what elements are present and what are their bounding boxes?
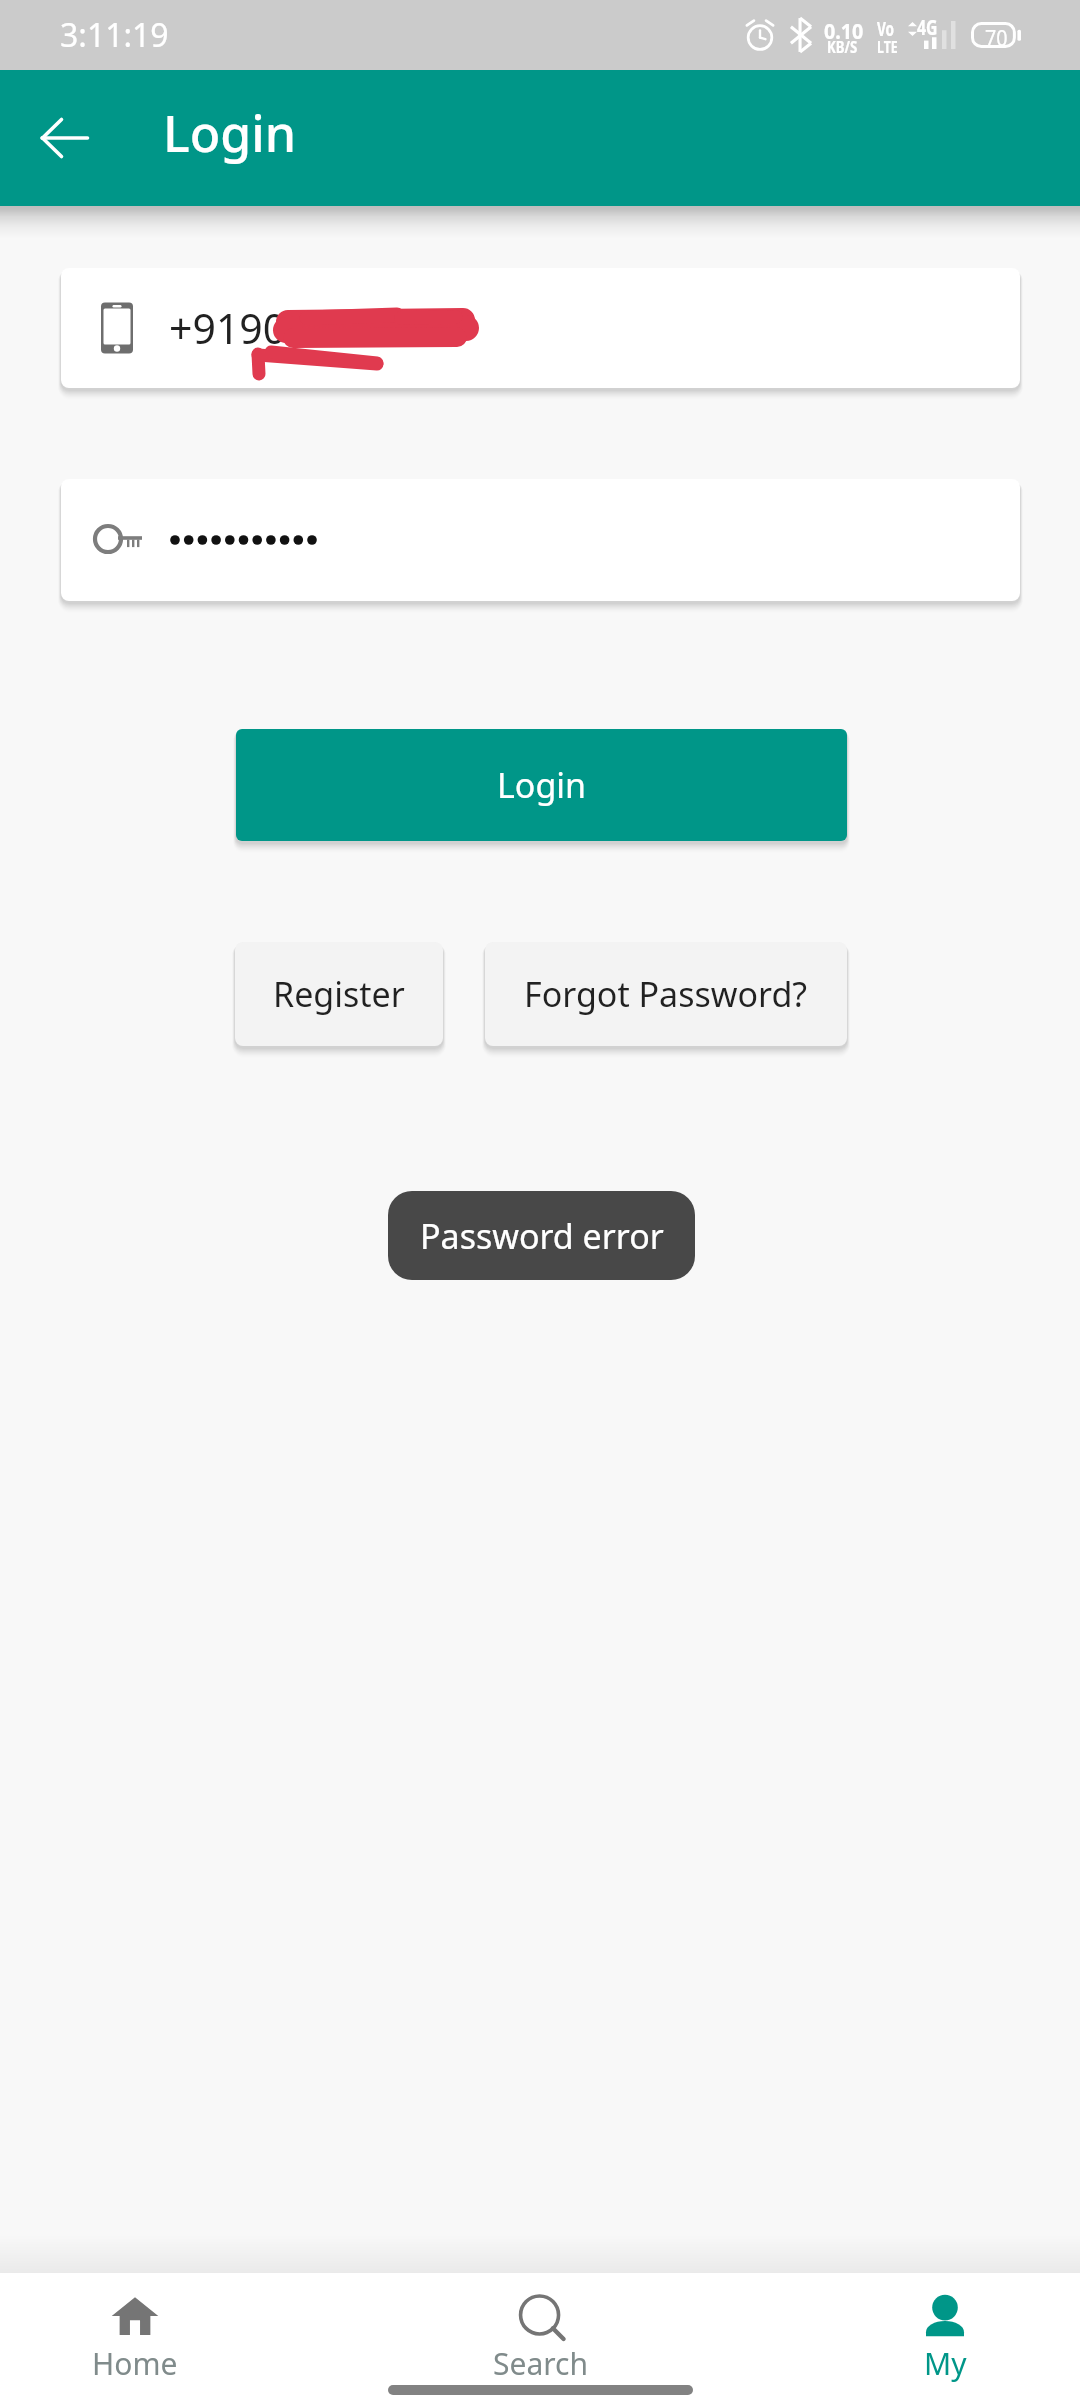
button[interactable]: My <box>810 2273 1080 2400</box>
button[interactable]: Back <box>24 98 104 178</box>
staticText: KB/S <box>827 35 858 58</box>
staticText: +9190 <box>169 300 287 356</box>
staticText: Login <box>163 99 297 167</box>
button[interactable]: Register <box>235 942 443 1046</box>
staticText: Password error <box>420 1213 664 1259</box>
staticText: 3:11:19 <box>60 13 169 57</box>
button[interactable] <box>61 479 1020 601</box>
button[interactable]: Search <box>405 2273 675 2400</box>
staticText: Search <box>493 2343 588 2384</box>
button[interactable]: Home <box>0 2273 270 2400</box>
staticText: Register <box>273 971 405 1017</box>
staticText: My <box>924 2343 967 2384</box>
button[interactable]: Forgot Password? <box>485 942 847 1046</box>
staticText: 70 <box>985 23 1008 52</box>
staticText: Home <box>92 2343 178 2384</box>
staticText: 0.10 <box>824 16 863 45</box>
button[interactable]: +9190 <box>61 268 1020 388</box>
button[interactable]: Login <box>236 729 847 841</box>
staticText: 4G <box>917 12 938 41</box>
staticText: Forgot Password? <box>524 971 808 1017</box>
staticText: Login <box>497 762 587 808</box>
staticText: LTE <box>877 35 898 58</box>
staticText: Vo <box>877 16 894 41</box>
